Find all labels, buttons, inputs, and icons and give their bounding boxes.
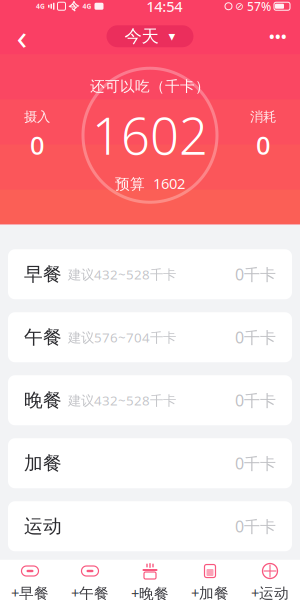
staticText: 0千卡: [235, 264, 276, 285]
staticText: +早餐: [11, 583, 49, 600]
staticText: ⊘: [235, 0, 244, 12]
staticText: 57%: [247, 0, 271, 14]
staticText: 14:54: [146, 0, 182, 16]
staticText: 早餐: [24, 263, 62, 286]
staticText: +运动: [251, 583, 289, 600]
staticText: 晚餐: [24, 389, 62, 412]
staticText: 运动: [24, 515, 62, 538]
staticText: +晚餐: [131, 583, 169, 600]
button[interactable]: 午餐: [8, 312, 292, 362]
staticText: 还可以吃（千卡）: [90, 77, 210, 95]
staticText: +加餐: [191, 583, 229, 600]
button[interactable]: Back: [0, 17, 44, 55]
button[interactable]: +运动: [240, 561, 300, 600]
staticText: 0千卡: [235, 516, 276, 537]
button[interactable]: 今天: [106, 25, 193, 47]
staticText: 摄入: [24, 109, 50, 125]
staticText: 0: [256, 128, 270, 162]
staticText: 0: [30, 128, 44, 162]
staticText: 午餐: [24, 326, 62, 349]
staticText: +午餐: [71, 583, 109, 600]
button[interactable]: 运动: [8, 501, 292, 551]
staticText: 建议576~704千卡: [68, 328, 176, 346]
button[interactable]: 晚餐: [8, 375, 292, 425]
staticText: 0千卡: [235, 453, 276, 474]
staticText: 建议432~528千卡: [68, 391, 176, 409]
button[interactable]: +午餐: [60, 561, 120, 600]
staticText: 0千卡: [235, 327, 276, 348]
button[interactable]: 加餐: [8, 438, 292, 488]
button[interactable]: +晚餐: [120, 561, 180, 600]
staticText: 建议432~528千卡: [68, 265, 176, 283]
staticText: 消耗: [250, 109, 276, 125]
staticText: 4G: [82, 2, 91, 11]
staticText: 预算 1602: [115, 174, 185, 193]
staticText: ‹: [16, 13, 27, 59]
staticText: 今天: [124, 26, 158, 47]
button[interactable]: +早餐: [0, 561, 60, 600]
button[interactable]: +加餐: [180, 561, 240, 600]
button[interactable]: More options: [256, 17, 300, 55]
staticText: 令: [68, 0, 79, 13]
staticText: ▾: [168, 29, 175, 44]
staticText: 加餐: [24, 452, 62, 475]
staticText: 0千卡: [235, 390, 276, 411]
button[interactable]: 早餐: [8, 249, 292, 299]
staticText: 4G: [36, 2, 45, 11]
staticText: •••: [269, 26, 287, 46]
staticText: 1602: [92, 101, 208, 169]
